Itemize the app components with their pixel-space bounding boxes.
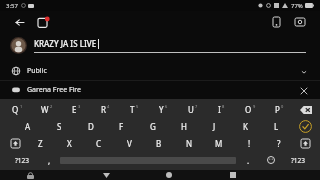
staticText: Y — [159, 104, 164, 115]
button[interactable]: ?123 — [282, 152, 314, 168]
button[interactable]: Switch camera — [266, 12, 286, 32]
button[interactable]: J — [199, 118, 230, 135]
button[interactable]: H — [168, 118, 199, 135]
button[interactable]: W — [32, 101, 62, 118]
button[interactable]: Z — [26, 135, 55, 152]
button[interactable]: Y — [149, 101, 178, 118]
staticText: 8 — [222, 104, 225, 109]
button[interactable]: E — [62, 101, 91, 118]
staticText: V — [127, 138, 132, 149]
button[interactable]: T — [120, 101, 149, 118]
button[interactable]: R — [91, 101, 120, 118]
button[interactable]: S — [44, 118, 75, 135]
staticText: W — [41, 104, 49, 115]
button[interactable]: A — [12, 118, 44, 135]
button[interactable]: ! — [234, 135, 264, 152]
staticText: . — [247, 155, 250, 166]
staticText: U — [188, 104, 194, 115]
staticText: B — [156, 138, 162, 149]
staticText: ?123 — [291, 156, 305, 165]
button[interactable]: X — [55, 135, 84, 152]
button[interactable]: M — [204, 135, 234, 152]
button[interactable]: G — [137, 118, 168, 135]
button[interactable]: ? — [264, 135, 294, 152]
button[interactable]: F — [106, 118, 137, 135]
staticText: J — [213, 121, 216, 132]
staticText: E — [72, 104, 77, 115]
staticText: 77% — [291, 2, 303, 10]
staticText: , — [48, 155, 51, 166]
staticText: Z — [38, 138, 43, 149]
button[interactable]: Backspace — [294, 101, 318, 118]
button[interactable]: Back — [10, 13, 28, 31]
button[interactable]: Emoji — [260, 152, 282, 168]
staticText: M — [215, 138, 223, 149]
staticText: G — [150, 121, 156, 132]
button[interactable]: U — [178, 101, 207, 118]
button[interactable]: N — [174, 135, 204, 152]
staticText: 1 — [20, 104, 23, 109]
staticText: 4 — [107, 104, 110, 109]
staticText: 3:57 — [6, 2, 18, 10]
staticText: F — [119, 121, 124, 132]
staticText: N — [186, 138, 193, 149]
staticText: 7 — [195, 104, 198, 109]
button[interactable]: C — [84, 135, 114, 152]
button[interactable]: Recent apps — [216, 170, 250, 180]
staticText: 3 — [78, 104, 81, 109]
staticText: D — [88, 121, 94, 132]
staticText: I — [218, 104, 221, 115]
button[interactable]: D — [75, 118, 106, 135]
staticText: KRAZY JA IS LIVE — [34, 38, 97, 49]
button[interactable]: Shift — [4, 135, 26, 152]
staticText: 6 — [165, 104, 168, 109]
staticText: S — [57, 121, 62, 132]
staticText: 9 — [253, 104, 256, 109]
button[interactable]: Live badge — [34, 13, 52, 31]
button[interactable]: Enter — [292, 118, 318, 135]
staticText: O — [245, 104, 252, 115]
staticText: ?123 — [15, 156, 29, 165]
staticText: ! — [248, 138, 251, 149]
button[interactable]: Period — [236, 152, 260, 168]
staticText: Q — [12, 104, 19, 115]
staticText: 0 — [281, 104, 284, 109]
button[interactable]: Shift — [294, 135, 316, 152]
button[interactable]: B — [144, 135, 174, 152]
button[interactable]: I — [207, 101, 236, 118]
button[interactable]: Q — [2, 101, 32, 118]
button[interactable]: P — [265, 101, 294, 118]
button[interactable]: V — [114, 135, 144, 152]
button[interactable]: Back — [89, 170, 123, 180]
staticText: P — [275, 104, 280, 115]
staticText: Garena Free Fire — [27, 85, 82, 95]
staticText: X — [67, 138, 72, 149]
staticText: C — [96, 138, 102, 149]
staticText: L — [274, 121, 279, 132]
staticText: A — [25, 121, 31, 132]
button[interactable]: Garena Free Fire — [0, 81, 320, 99]
button[interactable]: ?123 — [6, 152, 38, 168]
button[interactable]: Home — [152, 170, 186, 180]
button[interactable]: Public — [0, 62, 320, 80]
button[interactable]: Lock rotation — [0, 170, 60, 180]
staticText: 2 — [50, 104, 53, 109]
button[interactable]: K — [230, 118, 261, 135]
staticText: K — [243, 121, 248, 132]
button[interactable]: Comma — [38, 152, 60, 168]
staticText: ? — [277, 138, 281, 149]
staticText: T — [130, 104, 135, 115]
staticText: 5 — [136, 104, 139, 109]
button[interactable]: L — [261, 118, 292, 135]
staticText: H — [181, 121, 187, 132]
button[interactable]: Camera — [290, 12, 310, 32]
staticText: Public — [27, 66, 47, 76]
staticText: R — [101, 104, 106, 115]
button[interactable]: O — [236, 101, 265, 118]
